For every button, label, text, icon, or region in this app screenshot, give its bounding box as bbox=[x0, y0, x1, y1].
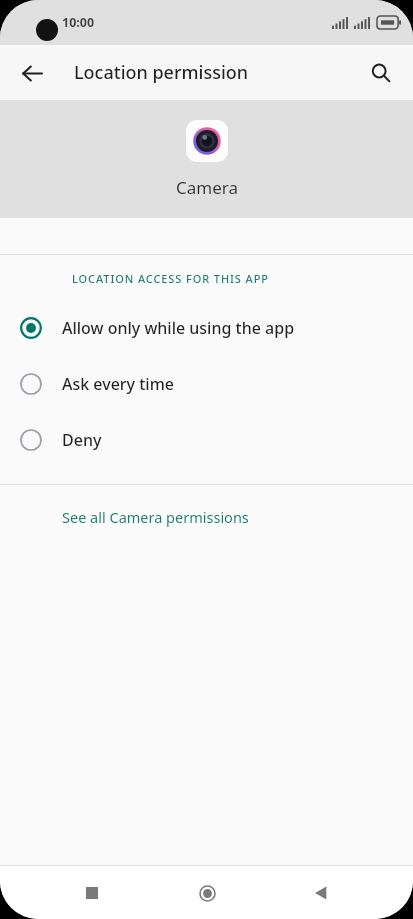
staticText: Location permission bbox=[74, 60, 249, 85]
button[interactable]: Recents bbox=[69, 870, 115, 916]
button[interactable]: See all Camera permissions bbox=[0, 485, 413, 549]
staticText: Allow only while using the app bbox=[62, 317, 295, 339]
button[interactable]: Search bbox=[363, 55, 399, 91]
button[interactable]: Ask every time bbox=[0, 356, 413, 412]
staticText: 10:00 bbox=[62, 14, 95, 31]
staticText: Ask every time bbox=[62, 373, 175, 395]
button[interactable]: Back bbox=[14, 55, 50, 91]
staticText: LOCATION ACCESS FOR THIS APP bbox=[72, 271, 269, 286]
staticText: Camera bbox=[176, 176, 238, 199]
button[interactable]: Back bbox=[298, 870, 344, 916]
staticText: Deny bbox=[62, 429, 102, 451]
button[interactable]: Home bbox=[184, 870, 230, 916]
button[interactable]: Allow only while using the app bbox=[0, 300, 413, 356]
staticText: See all Camera permissions bbox=[62, 507, 249, 527]
button[interactable]: Deny bbox=[0, 412, 413, 468]
